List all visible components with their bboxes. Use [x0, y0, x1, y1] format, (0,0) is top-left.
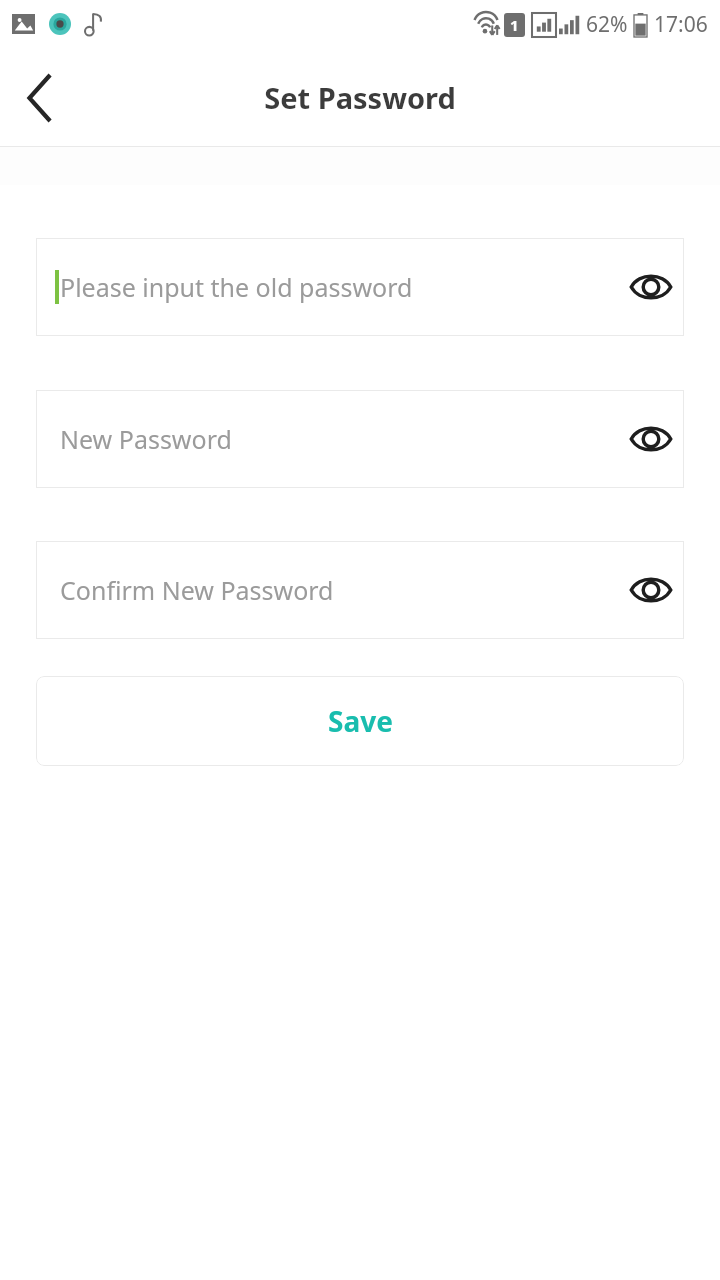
button[interactable]: Show password: [618, 557, 684, 623]
staticText: New Password: [60, 422, 232, 456]
button[interactable]: Show password: [618, 254, 684, 320]
button[interactable]: Save: [36, 676, 684, 766]
staticText: Save: [328, 702, 393, 740]
staticText: Confirm New Password: [60, 573, 334, 607]
staticText: 17:06: [654, 10, 708, 39]
button[interactable]: Confirm New Password: [36, 541, 684, 639]
staticText: Please input the old password: [60, 270, 413, 304]
button[interactable]: Please input the old password: [36, 238, 684, 336]
button[interactable]: Back: [0, 58, 80, 138]
staticText: 1: [510, 15, 519, 35]
staticText: 62%: [586, 10, 628, 39]
staticText: Set Password: [264, 78, 456, 117]
button[interactable]: Show password: [618, 406, 684, 472]
button[interactable]: New Password: [36, 390, 684, 488]
